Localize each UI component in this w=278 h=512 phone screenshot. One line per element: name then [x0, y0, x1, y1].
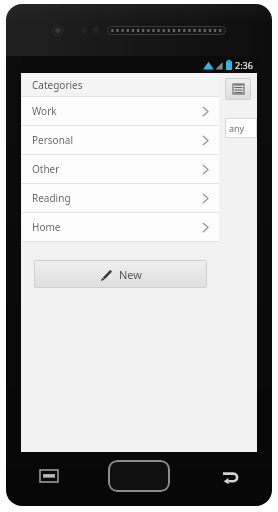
staticText: Other	[32, 162, 202, 176]
staticText: Personal	[32, 133, 202, 147]
button[interactable]: Back	[212, 459, 246, 493]
button[interactable]: Menu	[32, 459, 66, 493]
button[interactable]: Home	[22, 213, 219, 241]
button[interactable]: Reading	[22, 184, 219, 212]
staticText: Work	[32, 104, 202, 118]
staticText: any	[229, 122, 245, 134]
staticText: Home	[32, 220, 202, 234]
button[interactable]: Toggle view	[225, 78, 251, 100]
button[interactable]: Personal	[22, 126, 219, 154]
staticText: Categories	[32, 78, 83, 92]
staticText: Reading	[32, 191, 202, 205]
button[interactable]: Home	[108, 460, 170, 492]
button[interactable]: Work	[22, 97, 219, 125]
button[interactable]: New	[34, 260, 207, 288]
staticText: New	[119, 267, 142, 282]
button[interactable]: Other	[22, 155, 219, 183]
staticText: 2:36	[235, 59, 253, 71]
